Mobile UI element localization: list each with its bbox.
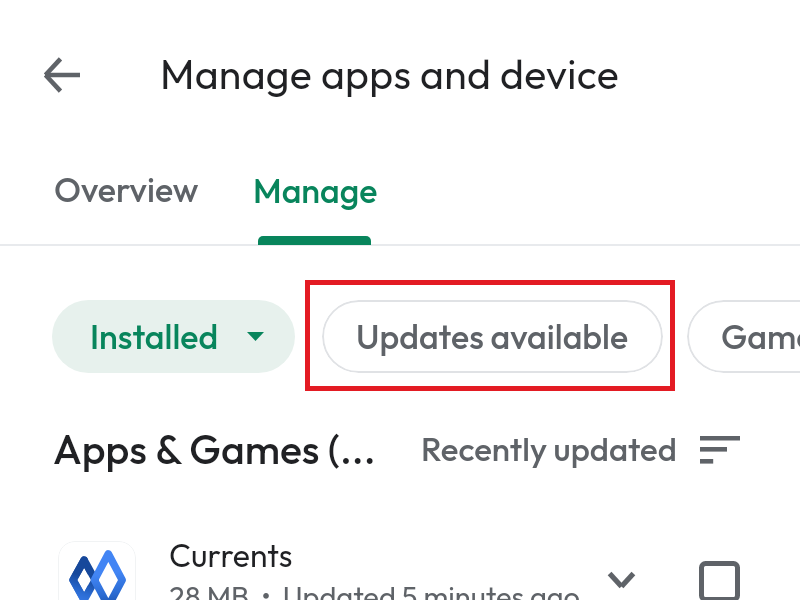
staticText: Overview — [54, 168, 199, 211]
button[interactable]: Select Currents — [699, 561, 740, 600]
staticText: Apps & Games (... — [53, 423, 376, 475]
button[interactable]: Installed — [52, 300, 295, 373]
button[interactable]: Back — [38, 51, 86, 99]
button[interactable]: Recently updated — [421, 425, 740, 473]
staticText: Installed — [90, 315, 219, 358]
button[interactable]: Overview — [22, 146, 231, 233]
button[interactable]: Updates available — [322, 300, 663, 373]
staticText: 28 MB • Updated 5 minutes ago — [169, 578, 580, 600]
button[interactable] — [0, 520, 800, 600]
staticText: Currents — [169, 535, 293, 575]
staticText: Games — [721, 315, 800, 358]
button[interactable]: Games — [687, 300, 800, 373]
staticText: Manage — [253, 169, 378, 212]
staticText: Manage apps and device — [160, 48, 620, 100]
button[interactable]: Manage — [233, 147, 398, 234]
staticText: Updates available — [356, 315, 629, 358]
staticText: Recently updated — [421, 428, 677, 470]
button[interactable]: Expand — [595, 554, 647, 600]
